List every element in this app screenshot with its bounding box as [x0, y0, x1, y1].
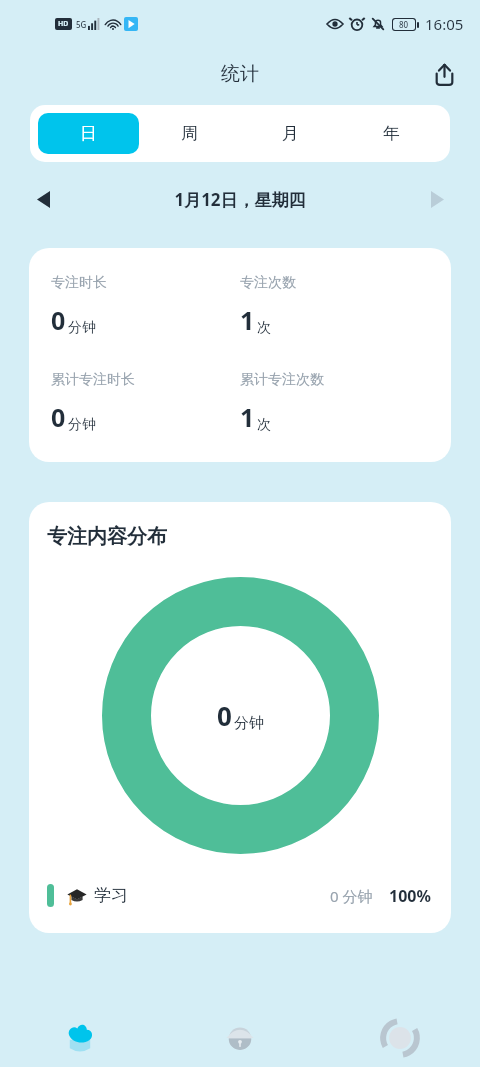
button[interactable]: Profile — [320, 1009, 480, 1067]
staticText: 100% — [389, 885, 431, 907]
staticText: 0 分钟 — [330, 886, 373, 906]
staticText: 分钟 — [68, 319, 96, 337]
staticText: 5G — [76, 19, 87, 30]
button[interactable]: 日 — [38, 113, 139, 154]
button[interactable]: Share — [424, 54, 464, 94]
staticText: 专注时长 — [51, 274, 107, 292]
staticText: 分钟 — [234, 714, 264, 733]
staticText: 80 — [399, 19, 409, 30]
staticText: 年 — [383, 123, 400, 144]
staticText: 1 — [240, 303, 255, 337]
staticText: 周 — [181, 123, 198, 144]
staticText: 专注次数 — [240, 274, 296, 292]
staticText: 0 — [51, 303, 66, 337]
button[interactable]: 学习 — [29, 884, 451, 907]
staticText: 16:05 — [425, 14, 464, 34]
staticText: HD — [58, 19, 69, 29]
staticText: 1 — [240, 400, 255, 434]
staticText: 分钟 — [68, 416, 96, 434]
button[interactable]: Next day — [420, 182, 454, 216]
button[interactable]: 专注时长 — [29, 248, 451, 462]
staticText: 累计专注时长 — [51, 371, 135, 389]
staticText: 日 — [80, 123, 97, 144]
staticText: 累计专注次数 — [240, 371, 324, 389]
button[interactable]: Focus — [0, 1009, 160, 1067]
staticText: 0 — [217, 698, 232, 733]
staticText: 次 — [257, 319, 271, 337]
staticText: 学习 — [94, 885, 128, 906]
staticText: 0 — [51, 400, 66, 434]
button[interactable]: Timer — [160, 1009, 320, 1067]
staticText: 次 — [257, 416, 271, 434]
button[interactable]: 周 — [139, 113, 240, 154]
button[interactable]: 年 — [341, 113, 442, 154]
staticText: 专注内容分布 — [47, 524, 167, 549]
button[interactable]: Previous day — [26, 182, 60, 216]
staticText: 月 — [282, 123, 299, 144]
button[interactable]: 月 — [240, 113, 341, 154]
staticText: 1月12日，星期四 — [60, 188, 420, 211]
staticText: 统计 — [221, 62, 259, 86]
